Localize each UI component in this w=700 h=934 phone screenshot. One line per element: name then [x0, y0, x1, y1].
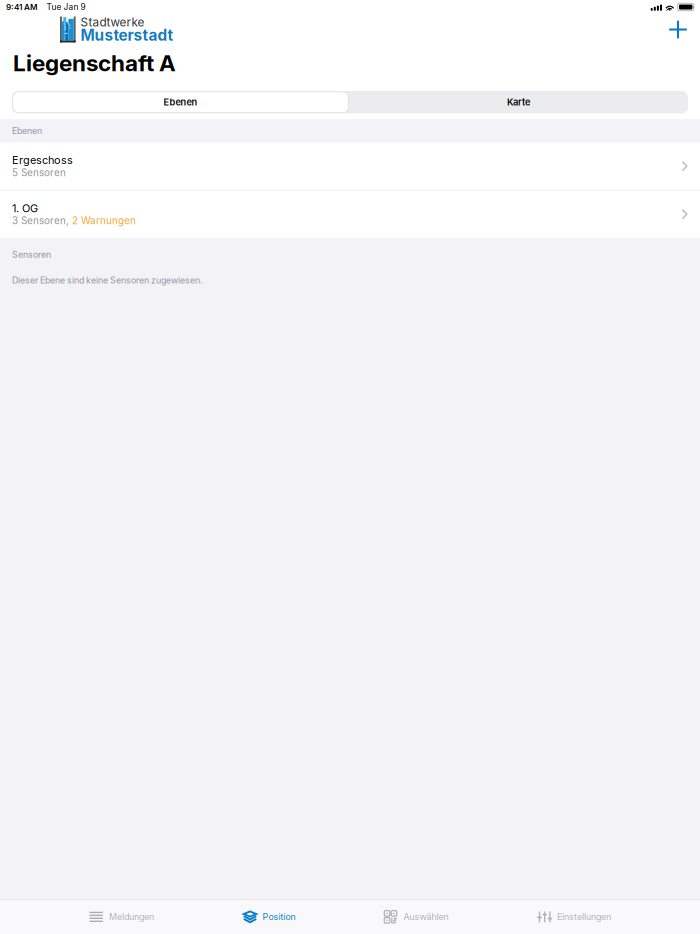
- button[interactable]: 1. OG: [0, 190, 700, 238]
- staticText: Meldungen: [109, 911, 154, 922]
- staticText: 1. OG: [12, 202, 38, 215]
- staticText: 9:41 AM: [6, 2, 38, 12]
- button[interactable]: Meldungen: [89, 901, 154, 932]
- staticText: 2 Warnungen: [72, 215, 136, 227]
- button[interactable]: Einstellungen: [537, 901, 611, 933]
- staticText: Liegenschaft A: [13, 49, 176, 77]
- staticText: Ergeschoss: [12, 153, 73, 167]
- staticText: Einstellungen: [557, 911, 611, 922]
- staticText: 3 Sensoren,: [12, 215, 72, 227]
- button[interactable]: Ergeschoss: [0, 142, 700, 190]
- staticText: Ebenen: [163, 97, 197, 108]
- button[interactable]: Auswählen: [384, 901, 448, 933]
- button[interactable]: Position: [243, 901, 296, 933]
- staticText: Sensoren: [12, 249, 51, 260]
- button[interactable]: Karte: [349, 91, 688, 113]
- staticText: Karte: [507, 97, 530, 108]
- staticText: Stadtwerke: [81, 15, 145, 29]
- staticText: Position: [263, 911, 296, 922]
- staticText: Tue Jan 9: [46, 2, 85, 12]
- staticText: Ebenen: [12, 126, 42, 136]
- staticText: 5 Sensoren: [12, 167, 66, 178]
- button[interactable]: Ebenen: [12, 91, 349, 113]
- staticText: Auswählen: [403, 911, 448, 922]
- staticText: Musterstadt: [81, 26, 174, 45]
- staticText: Dieser Ebene sind keine Sensoren zugewie…: [12, 275, 203, 285]
- button[interactable]: Hinzufügen: [663, 14, 693, 44]
